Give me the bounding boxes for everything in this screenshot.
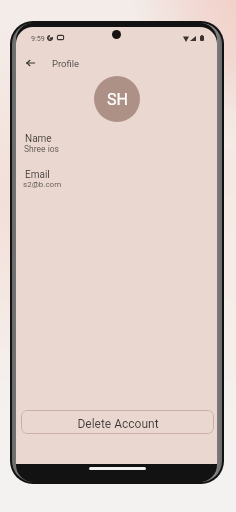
button[interactable]: Back [20,52,41,73]
staticText: Email [25,169,50,181]
button[interactable]: Delete Account [21,410,214,434]
staticText: SH [107,90,128,109]
staticText: s2@b.com [23,180,62,189]
staticText: 9:59 [31,34,45,42]
staticText: Delete Account [77,417,159,431]
staticText: Name [25,133,52,145]
staticText: Shree ios [24,144,59,154]
staticText: Profile [52,58,80,69]
